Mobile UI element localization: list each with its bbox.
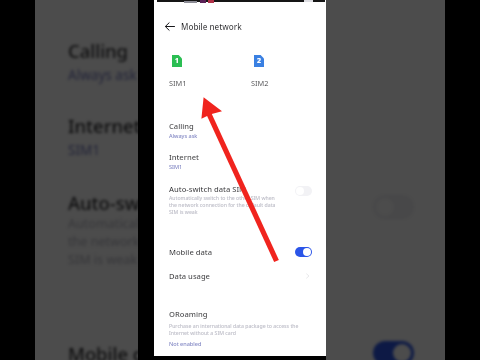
staticText: 2	[257, 56, 262, 66]
staticText: Calling	[169, 121, 194, 131]
button[interactable]: Auto-switch data SIM	[35, 183, 445, 270]
button[interactable]: ORoaming	[154, 306, 326, 352]
button[interactable]: Calling	[35, 28, 445, 93]
staticText: Automatically switch to the other SIM wh…	[68, 215, 339, 268]
staticText: Mobile data	[169, 247, 213, 257]
button[interactable]: Turn off	[373, 341, 414, 360]
staticText: Mobile network	[181, 21, 242, 32]
staticText: Calling	[68, 38, 129, 63]
button[interactable]: Mobile data	[154, 242, 326, 262]
staticText: Internet	[68, 113, 141, 138]
staticText: Auto-switch data SIM	[68, 190, 255, 215]
button[interactable]: Back	[154, 16, 326, 36]
button[interactable]: Internet	[154, 148, 326, 175]
staticText: Always ask	[169, 132, 198, 140]
staticText: Automatically switch to the other SIM wh…	[169, 194, 281, 215]
button[interactable]: Turn off	[295, 247, 312, 257]
button[interactable]: 2	[251, 55, 309, 88]
button[interactable]: Auto-switch data SIM	[154, 181, 326, 217]
button[interactable]: Turn on	[295, 186, 312, 196]
staticText: 1	[175, 56, 180, 66]
staticText: Auto-switch data SIM	[169, 184, 247, 194]
staticText: SIM2	[251, 78, 269, 88]
button[interactable]: Back	[165, 19, 175, 33]
staticText: Internet	[169, 152, 199, 162]
button[interactable]: Mobile data	[35, 329, 445, 360]
button[interactable]: 1	[169, 55, 227, 88]
button[interactable]: Data usage	[154, 266, 326, 286]
staticText: SIM1	[169, 78, 187, 88]
staticText: SIM1	[169, 163, 183, 171]
staticText: Purchase an international data package t…	[169, 322, 300, 336]
staticText: Always ask	[68, 66, 137, 84]
staticText: ORoaming	[169, 309, 208, 319]
button[interactable]: Calling	[154, 117, 326, 144]
button[interactable]: Internet	[35, 103, 445, 168]
staticText: SIM1	[68, 141, 101, 159]
staticText: Data usage	[169, 271, 210, 281]
staticText: Mobile data	[68, 341, 173, 360]
staticText: Not enabled	[169, 340, 202, 348]
